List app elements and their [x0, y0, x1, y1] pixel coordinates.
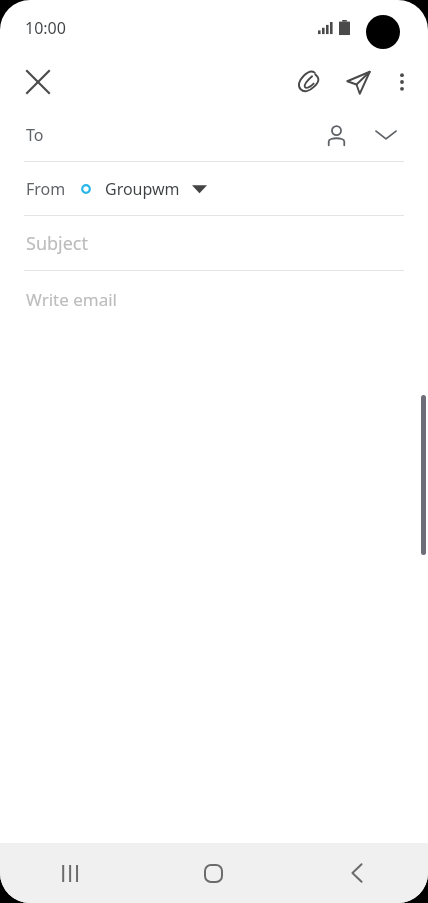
button[interactable]: Attach file: [286, 58, 334, 106]
button[interactable]: Home: [142, 843, 285, 903]
button[interactable]: Recent apps: [0, 843, 142, 903]
button[interactable]: Add recipient from contacts: [316, 115, 356, 155]
staticText: 10:00: [25, 17, 66, 39]
button[interactable]: From: [0, 162, 428, 215]
staticText: Groupwm: [105, 178, 180, 200]
staticText: Write email: [26, 288, 117, 311]
button[interactable]: Send: [334, 58, 382, 106]
button[interactable]: Subject: [0, 216, 428, 270]
button[interactable]: Back: [285, 843, 428, 903]
staticText: Subject: [26, 231, 89, 256]
button[interactable]: Write email: [0, 271, 428, 327]
button[interactable]: More options: [382, 59, 422, 105]
staticText: To: [26, 124, 44, 146]
button[interactable]: Show Cc and Bcc: [364, 113, 408, 157]
button[interactable]: Close: [14, 58, 62, 106]
button[interactable]: To: [0, 108, 428, 161]
staticText: From: [26, 178, 66, 200]
